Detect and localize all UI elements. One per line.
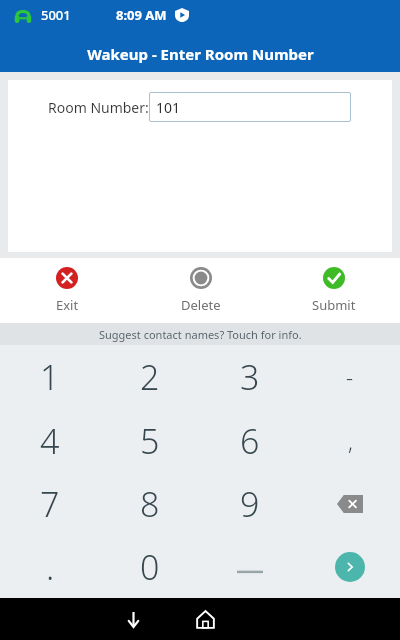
staticText: 3 [240, 354, 260, 400]
button[interactable]: Backspace [300, 472, 400, 535]
staticText: Exit [56, 296, 79, 314]
button[interactable]: 3 [200, 345, 300, 409]
staticText: 4 [40, 418, 60, 464]
button[interactable]: Delete [134, 258, 267, 323]
button[interactable]: , [300, 409, 400, 472]
button[interactable]: Submit [267, 258, 400, 323]
staticText: 9 [240, 481, 260, 527]
button[interactable]: 2 [100, 345, 200, 409]
button[interactable]: Exit [0, 258, 134, 323]
button[interactable]: Space [200, 535, 300, 598]
staticText: 1 [40, 354, 60, 400]
staticText: Suggest contact names? Touch for info. [99, 327, 302, 342]
button[interactable]: Suggest contact names? Touch for info. [0, 323, 400, 345]
button[interactable]: Enter [300, 535, 400, 598]
staticText: Room Number: [48, 98, 149, 117]
staticText: 2 [140, 354, 160, 400]
staticText: - [346, 362, 354, 392]
button[interactable]: 101 [149, 92, 351, 122]
staticText: Wakeup - Enter Room Number [87, 44, 314, 64]
button[interactable]: 0 [100, 535, 200, 598]
staticText: Submit [312, 296, 356, 314]
button[interactable]: 4 [0, 409, 100, 472]
button[interactable]: 5 [100, 409, 200, 472]
staticText: Delete [181, 296, 221, 314]
button[interactable]: Hide keyboard [111, 598, 155, 640]
staticText: 101 [156, 98, 181, 117]
button[interactable]: 6 [200, 409, 300, 472]
button[interactable]: . [0, 535, 100, 598]
button[interactable]: 8 [100, 472, 200, 535]
staticText: 5001 [41, 6, 71, 24]
button[interactable]: Home [183, 598, 227, 640]
staticText: . [46, 544, 55, 590]
staticText: 6 [240, 418, 260, 464]
staticText: 7 [40, 481, 60, 527]
staticText: , [348, 426, 353, 456]
staticText: 8:09 AM [116, 6, 167, 24]
staticText: 5 [140, 418, 160, 464]
button[interactable]: - [300, 345, 400, 409]
staticText: 8 [140, 481, 160, 527]
button[interactable]: 9 [200, 472, 300, 535]
button[interactable]: 7 [0, 472, 100, 535]
button[interactable]: 1 [0, 345, 100, 409]
staticText: 0 [140, 544, 160, 590]
